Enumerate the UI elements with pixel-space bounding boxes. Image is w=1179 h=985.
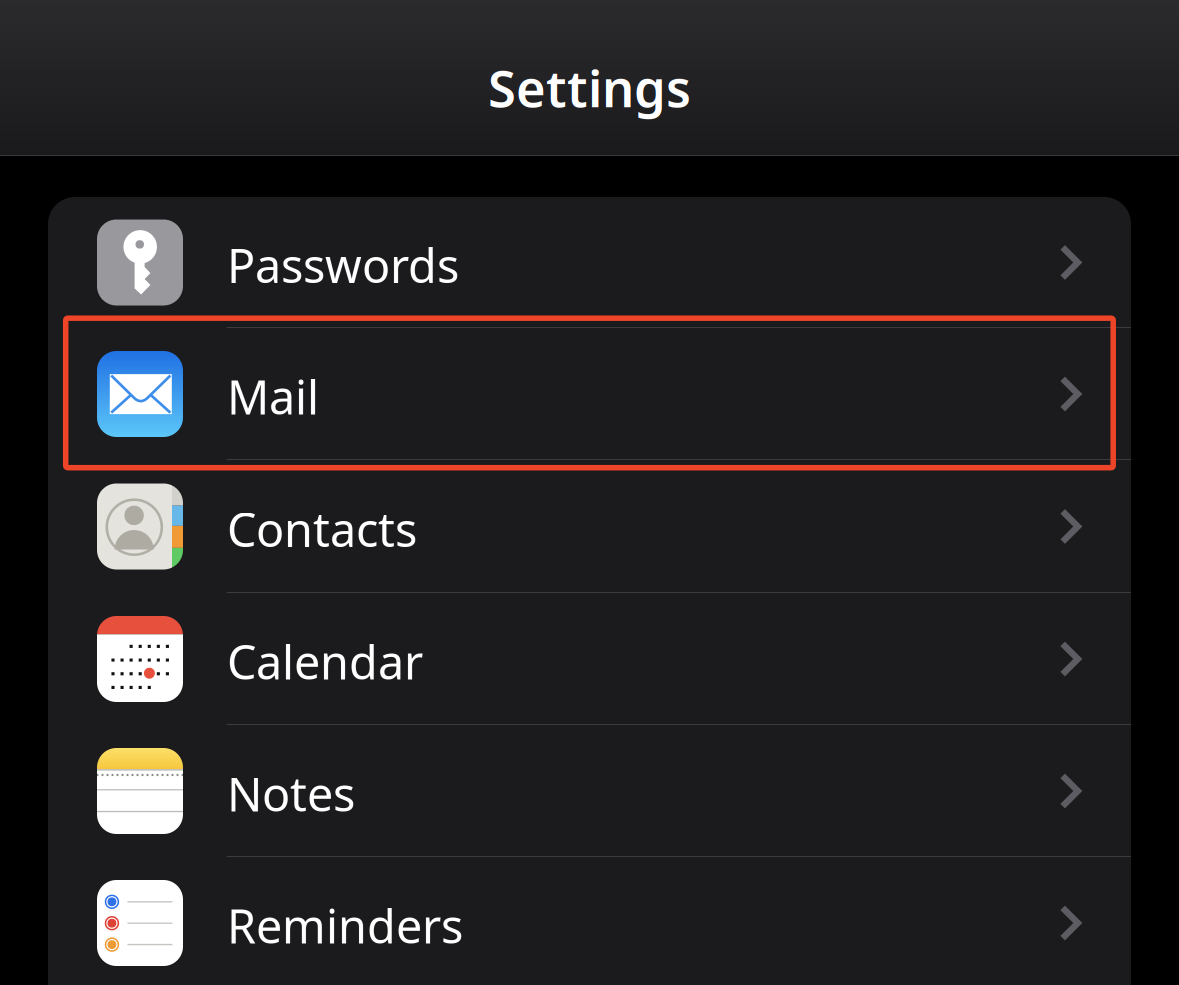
- button[interactable]: Passwords: [48, 197, 1131, 328]
- button[interactable]: Mail: [48, 328, 1131, 460]
- button[interactable]: Calendar: [48, 593, 1131, 725]
- button[interactable]: Reminders: [48, 857, 1131, 985]
- button[interactable]: Notes: [48, 725, 1131, 857]
- staticText: Calendar: [227, 630, 423, 692]
- staticText: Settings: [488, 54, 691, 121]
- staticText: Passwords: [227, 234, 459, 296]
- staticText: Reminders: [227, 894, 463, 956]
- staticText: Notes: [227, 762, 355, 824]
- staticText: Mail: [227, 365, 319, 427]
- staticText: Contacts: [227, 498, 417, 560]
- button[interactable]: Contacts: [48, 460, 1131, 593]
